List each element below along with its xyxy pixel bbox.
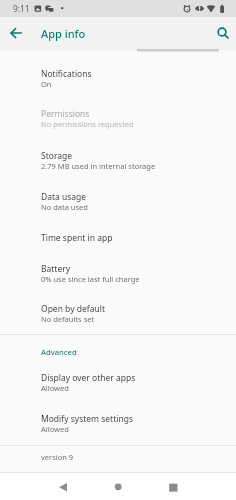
staticText: No defaults set: [41, 314, 95, 324]
staticText: No permissions requested: [41, 119, 134, 129]
button[interactable]: Home: [107, 475, 129, 497]
staticText: Storage: [41, 150, 73, 162]
button[interactable]: Recent apps: [162, 475, 184, 497]
staticText: Display over other apps: [41, 372, 136, 384]
staticText: Modify system settings: [41, 413, 133, 425]
button[interactable]: Data usage: [0, 183, 236, 224]
button[interactable]: Battery: [0, 255, 236, 296]
button[interactable]: Navigate up: [5, 21, 29, 45]
staticText: 2.79 MB used in internal storage: [41, 161, 156, 171]
staticText: version 9: [41, 452, 74, 462]
button[interactable]: Notifications: [0, 60, 236, 101]
button[interactable]: Permissions: [0, 100, 236, 141]
staticText: Open by default: [41, 303, 105, 315]
staticText: App info: [41, 26, 86, 41]
staticText: Advanced: [41, 347, 77, 357]
button[interactable]: Back: [52, 475, 74, 497]
staticText: Data usage: [41, 191, 87, 203]
staticText: Time spent in app: [41, 232, 113, 244]
button[interactable]: Display over other apps: [0, 364, 236, 405]
staticText: Allowed: [41, 424, 69, 434]
staticText: Permissions: [41, 108, 90, 120]
staticText: Allowed: [41, 383, 69, 393]
staticText: 0% use since last full charge: [41, 274, 140, 284]
staticText: Battery: [41, 263, 71, 275]
staticText: Notifications: [41, 68, 92, 80]
staticText: On: [41, 79, 52, 89]
button[interactable]: Search: [210, 21, 234, 45]
staticText: 9:11: [13, 3, 30, 14]
button[interactable]: Open by default: [0, 295, 236, 336]
button[interactable]: Storage: [0, 142, 236, 183]
button[interactable]: Advanced: [0, 341, 236, 363]
button[interactable]: Time spent in app: [0, 224, 236, 254]
button[interactable]: Modify system settings: [0, 405, 236, 446]
staticText: No data used: [41, 202, 88, 212]
